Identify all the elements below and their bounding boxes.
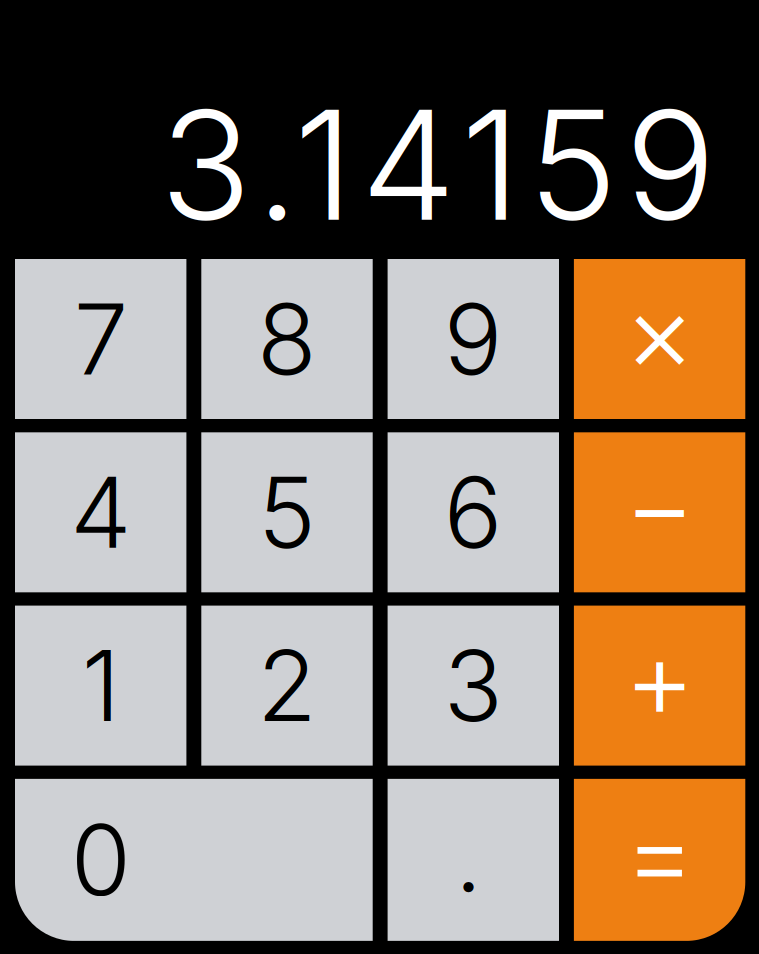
button[interactable]: 2 [201,606,373,766]
staticText: 9 [444,280,503,398]
button[interactable]: Equals [574,779,745,941]
staticText: 6 [444,453,503,571]
button[interactable]: Decimal point [388,779,559,941]
staticText: 3 [444,627,503,744]
staticText: 0 [71,801,131,919]
staticText: + [624,612,695,745]
button[interactable]: 8 [201,259,373,419]
button[interactable]: 0 [15,779,373,941]
staticText: 1 [82,627,120,744]
staticText: 8 [257,280,317,398]
button[interactable]: Add [574,606,745,766]
staticText: − [624,439,695,571]
staticText: 3.14159 [160,74,716,256]
button[interactable]: 1 [15,606,186,766]
staticText: × [624,266,695,398]
button[interactable]: 9 [388,259,559,419]
staticText: 2 [257,627,317,744]
button[interactable]: 6 [388,432,559,592]
button[interactable]: 4 [15,432,186,592]
button[interactable]: 3 [388,606,559,766]
staticText: 7 [74,280,128,398]
button[interactable]: 5 [201,432,373,592]
button[interactable]: Multiply [574,259,745,419]
staticText: 5 [258,453,316,571]
staticText: . [455,797,482,915]
staticText: = [624,787,695,919]
staticText: 4 [70,453,131,571]
button[interactable]: 7 [15,259,186,419]
button[interactable]: Subtract [574,432,745,592]
